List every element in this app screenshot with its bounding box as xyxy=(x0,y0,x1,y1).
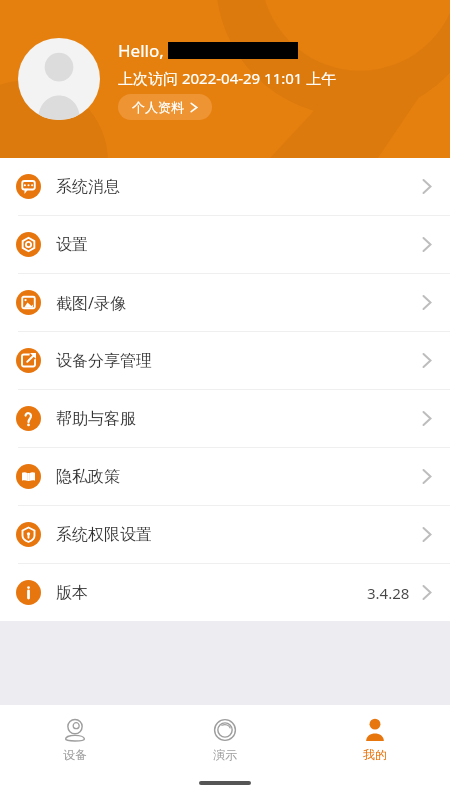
staticText: 隐私政策 xyxy=(56,467,120,487)
button[interactable]: 演示 xyxy=(150,705,300,773)
button[interactable]: 系统消息 xyxy=(0,158,450,215)
button[interactable]: 个人资料 xyxy=(118,94,212,120)
button[interactable]: 隐私政策 xyxy=(0,448,450,505)
staticText: 个人资料 xyxy=(132,99,184,115)
staticText: 帮助与客服 xyxy=(56,409,136,429)
staticText: 截图/录像 xyxy=(56,292,126,314)
staticText: 系统消息 xyxy=(56,177,120,197)
button[interactable]: 系统权限设置 xyxy=(0,506,450,563)
button[interactable]: Profile picture xyxy=(18,38,100,120)
staticText: 版本 xyxy=(56,583,88,603)
staticText: 演示 xyxy=(213,747,237,762)
staticText: 3.4.28 xyxy=(367,583,410,603)
button[interactable]: 我的 xyxy=(300,705,450,773)
staticText: 设备 xyxy=(63,747,87,762)
button[interactable]: 设备 xyxy=(0,705,150,773)
staticText: Hello, xyxy=(118,39,164,62)
button[interactable]: 设备分享管理 xyxy=(0,332,450,389)
button[interactable]: 帮助与客服 xyxy=(0,390,450,447)
staticText: 系统权限设置 xyxy=(56,525,152,545)
staticText: 设备分享管理 xyxy=(56,351,152,371)
staticText: 上次访问 2022-04-29 11:01 上午 xyxy=(118,68,337,88)
button[interactable]: 截图/录像 xyxy=(0,274,450,331)
staticText: 设置 xyxy=(56,235,88,255)
staticText: 我的 xyxy=(363,747,387,762)
button[interactable]: 版本 xyxy=(0,564,450,621)
button[interactable]: 设置 xyxy=(0,216,450,273)
